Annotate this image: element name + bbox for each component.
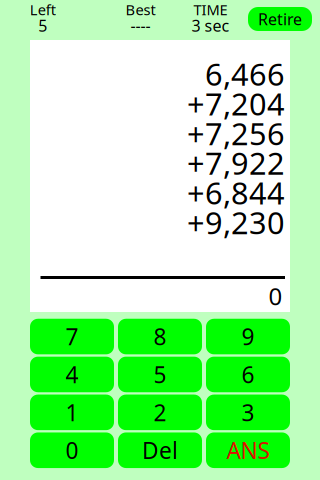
button[interactable]: 4	[30, 357, 114, 392]
staticText: 3	[241, 397, 254, 427]
staticText: TIME	[193, 0, 227, 19]
staticText: 9	[241, 321, 254, 352]
staticText: +6,844	[187, 172, 285, 213]
staticText: 0	[268, 280, 282, 312]
staticText: 8	[153, 321, 166, 352]
staticText: 3 sec	[191, 15, 229, 36]
button[interactable]: 5	[118, 357, 202, 392]
button[interactable]: 3	[206, 395, 290, 430]
button[interactable]: 2	[118, 395, 202, 430]
staticText: 1	[65, 397, 78, 427]
staticText: 5	[153, 359, 166, 389]
staticText: 0	[65, 435, 78, 465]
button[interactable]: 1	[30, 395, 114, 430]
staticText: 2	[153, 397, 166, 427]
button[interactable]: 7	[30, 319, 114, 354]
button[interactable]: 6	[206, 357, 290, 392]
button[interactable]: 9	[206, 319, 290, 354]
staticText: +7,922	[187, 143, 285, 183]
staticText: 7	[65, 321, 78, 352]
button[interactable]: 8	[118, 319, 202, 354]
staticText: +7,204	[187, 83, 285, 124]
button[interactable]: ANS	[206, 432, 290, 468]
staticText: 6,466	[205, 53, 285, 94]
staticText: Best	[125, 0, 155, 19]
button[interactable]: 0	[30, 432, 114, 468]
button[interactable]: Retire	[248, 7, 312, 31]
staticText: 4	[65, 359, 78, 389]
staticText: +7,256	[187, 113, 285, 154]
staticText: Retire	[258, 8, 302, 30]
staticText: 5	[38, 15, 47, 36]
staticText: +9,230	[187, 202, 285, 243]
staticText: 6	[241, 359, 254, 389]
staticText: ----	[130, 15, 150, 36]
button[interactable]: Del	[118, 432, 202, 468]
staticText: Left	[30, 0, 56, 19]
staticText: ANS	[226, 435, 269, 465]
staticText: Del	[142, 435, 178, 465]
